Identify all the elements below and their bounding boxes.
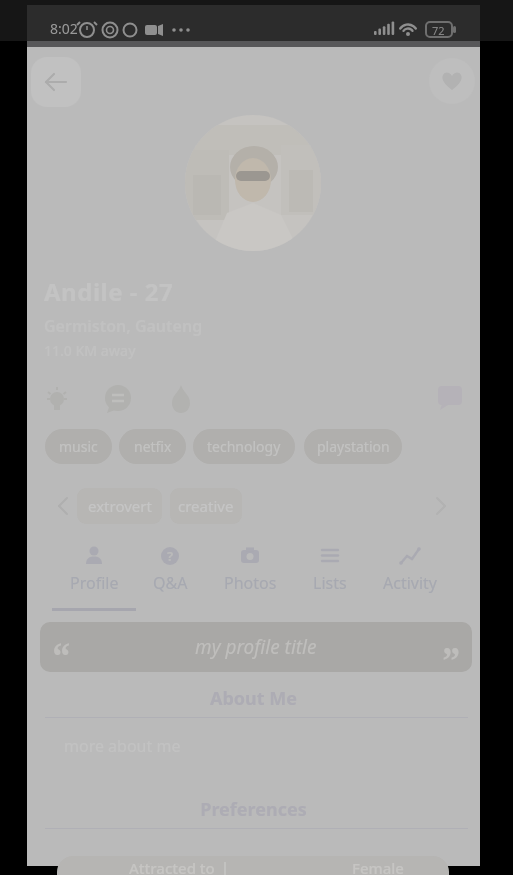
staticText: Photos [224, 572, 277, 594]
staticText: Attracted to [129, 858, 215, 875]
staticText: technology [207, 437, 281, 456]
button[interactable]: playstation [304, 429, 402, 464]
staticText: Andile - 27 [44, 275, 174, 308]
button[interactable]: “ [40, 622, 472, 672]
staticText: Activity [383, 572, 438, 594]
button[interactable] [31, 57, 81, 107]
staticText: creative [178, 496, 234, 516]
staticText: music [59, 437, 98, 456]
staticText: “ [52, 630, 71, 672]
button[interactable]: technology [193, 429, 295, 464]
staticText: playstation [317, 437, 390, 456]
button[interactable]: creative [170, 488, 242, 524]
staticText: netfix [134, 437, 172, 456]
staticText: Q&A [153, 572, 188, 594]
button[interactable]: Activity [370, 543, 450, 603]
button[interactable]: Profile [54, 543, 134, 603]
button[interactable]: netfix [119, 429, 186, 464]
staticText: Profile [70, 572, 119, 594]
button[interactable]: Photos [210, 543, 290, 603]
button[interactable] [436, 384, 464, 410]
button[interactable] [429, 58, 475, 104]
staticText: Female [352, 858, 404, 875]
button[interactable]: Attracted to [57, 856, 449, 875]
staticText: 8:02 [50, 19, 78, 38]
button[interactable]: Lists [290, 543, 370, 603]
staticText: ? [167, 547, 174, 565]
staticText: ” [442, 634, 461, 672]
staticText: my profile title [195, 634, 317, 660]
staticText: extrovert [88, 496, 152, 516]
button[interactable]: music [45, 429, 112, 464]
button[interactable]: extrovert [77, 488, 162, 524]
button[interactable]: ? [130, 543, 210, 603]
staticText: 72 [432, 23, 445, 38]
staticText: Lists [313, 572, 347, 594]
